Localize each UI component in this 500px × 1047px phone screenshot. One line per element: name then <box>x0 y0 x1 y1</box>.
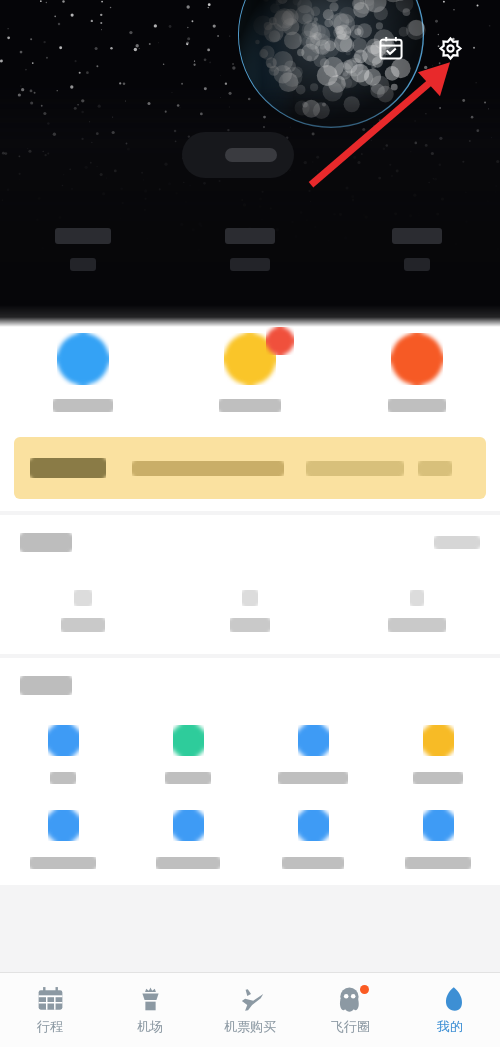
button[interactable]: Calendar <box>371 28 411 68</box>
staticText: 我的 <box>437 1018 463 1034</box>
button[interactable] <box>11 725 115 784</box>
staticText: 行程 <box>37 1018 63 1034</box>
button[interactable] <box>136 810 240 869</box>
staticText: 飞行圈 <box>331 1018 370 1034</box>
button[interactable]: 机场 <box>100 973 200 1047</box>
button[interactable] <box>261 725 365 784</box>
button[interactable] <box>195 590 305 632</box>
button[interactable] <box>195 333 305 412</box>
button[interactable] <box>28 333 138 412</box>
button[interactable] <box>14 437 486 499</box>
staticText: 机票购买 <box>224 1018 276 1034</box>
button[interactable] <box>195 228 305 271</box>
button[interactable]: Settings <box>430 28 470 68</box>
button[interactable] <box>182 132 294 178</box>
button[interactable]: 飞行圈 <box>300 973 400 1047</box>
staticText: 机场 <box>137 1018 163 1034</box>
button[interactable] <box>136 725 240 784</box>
button[interactable] <box>386 810 490 869</box>
button[interactable] <box>362 228 472 271</box>
button[interactable]: 行程 <box>0 973 100 1047</box>
button[interactable] <box>362 333 472 412</box>
button[interactable] <box>28 590 138 632</box>
button[interactable] <box>261 810 365 869</box>
button[interactable]: 机票购买 <box>200 973 300 1047</box>
button[interactable]: 我的 <box>400 973 500 1047</box>
button[interactable] <box>434 536 480 549</box>
button[interactable] <box>28 228 138 271</box>
button[interactable] <box>386 725 490 784</box>
button[interactable] <box>362 590 472 632</box>
button[interactable] <box>11 810 115 869</box>
